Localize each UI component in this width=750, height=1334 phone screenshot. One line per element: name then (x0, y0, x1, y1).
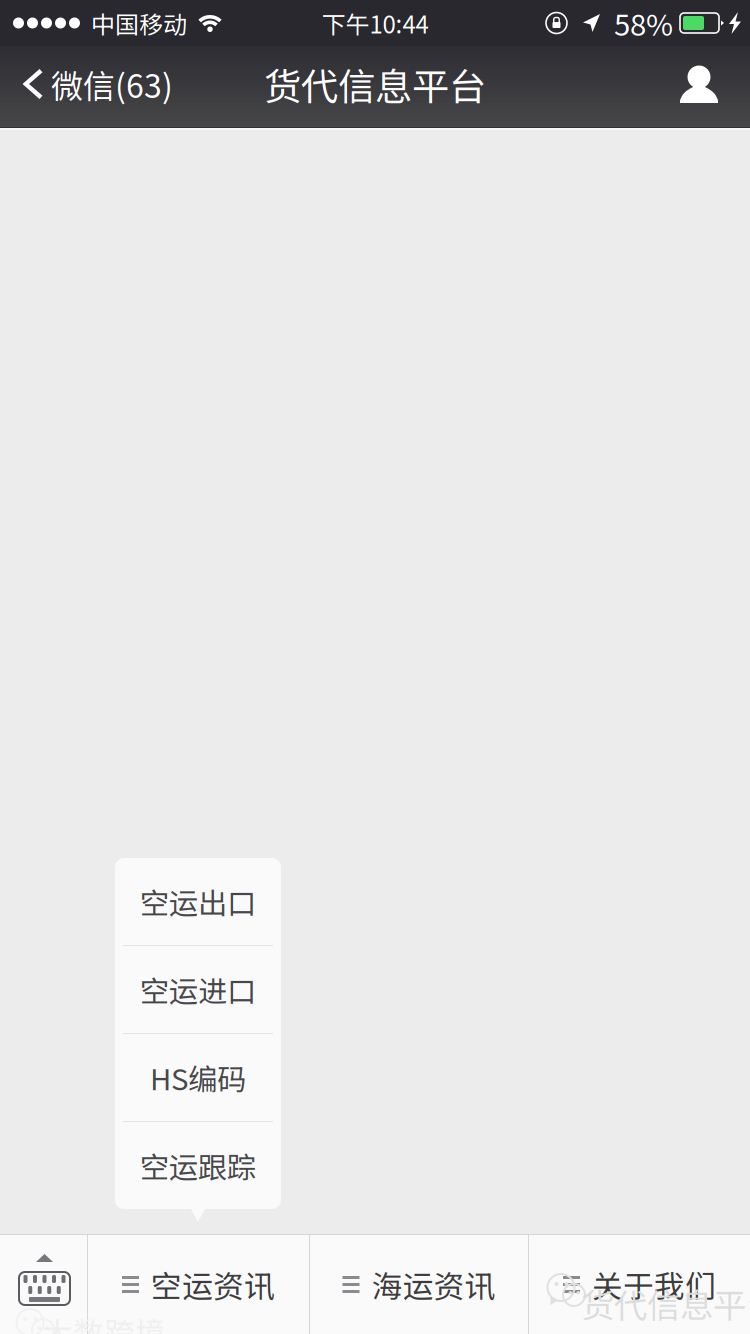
button[interactable]: 空运进口 (115, 946, 281, 1033)
staticText: 空运出口 (140, 880, 256, 923)
staticText: 微信(63) (51, 61, 173, 107)
button[interactable]: 微信(63) (0, 37, 183, 131)
staticText: 货代信息平台 (581, 1279, 750, 1327)
staticText: 海运资讯 (371, 1262, 495, 1307)
button[interactable]: 关于我们 (529, 1235, 750, 1334)
staticText: 中国移动 (91, 6, 187, 40)
button[interactable]: 海运资讯 (310, 1235, 528, 1334)
staticText: HS编码 (150, 1056, 246, 1099)
button[interactable]: 个人中心 (658, 45, 750, 122)
staticText: 空运资讯 (151, 1262, 275, 1307)
button[interactable]: HS编码 (115, 1034, 281, 1121)
staticText: 下午10:44 (321, 6, 428, 40)
staticText: 关于我们 (592, 1262, 716, 1307)
button[interactable]: 空运出口 (115, 858, 281, 945)
button[interactable]: 空运资讯 (88, 1235, 309, 1334)
staticText: 空运跟踪 (140, 1144, 256, 1187)
staticText: 货代信息平台 (264, 57, 486, 111)
button[interactable]: 空运跟踪 (115, 1122, 281, 1209)
button[interactable]: 键盘 (0, 1235, 87, 1334)
staticText: 大数跨境 (42, 1309, 166, 1334)
staticText: 空运进口 (140, 968, 256, 1011)
staticText: 58% (614, 2, 673, 44)
